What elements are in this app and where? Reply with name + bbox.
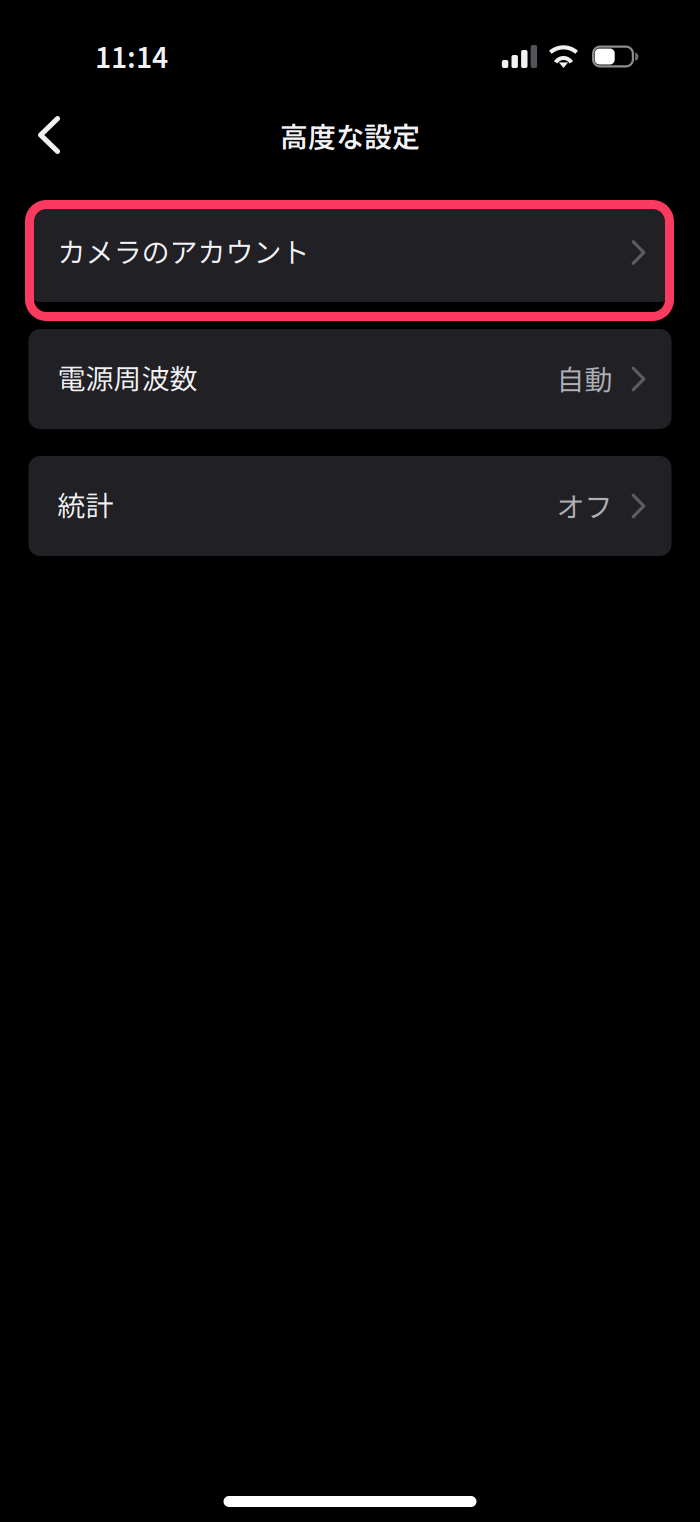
staticText: 11:14 (95, 35, 168, 76)
staticText: 高度な設定 (280, 115, 420, 155)
button[interactable]: Back (0, 102, 86, 168)
staticText: カメラのアカウント (57, 230, 309, 271)
button[interactable]: カメラのアカウント (28, 209, 671, 302)
staticText: オフ (556, 485, 612, 525)
staticText: 自動 (556, 358, 612, 398)
button[interactable]: 統計 (28, 456, 671, 556)
staticText: 統計 (57, 484, 113, 524)
staticText: 電源周波数 (57, 357, 197, 397)
button[interactable]: 電源周波数 (28, 329, 671, 429)
